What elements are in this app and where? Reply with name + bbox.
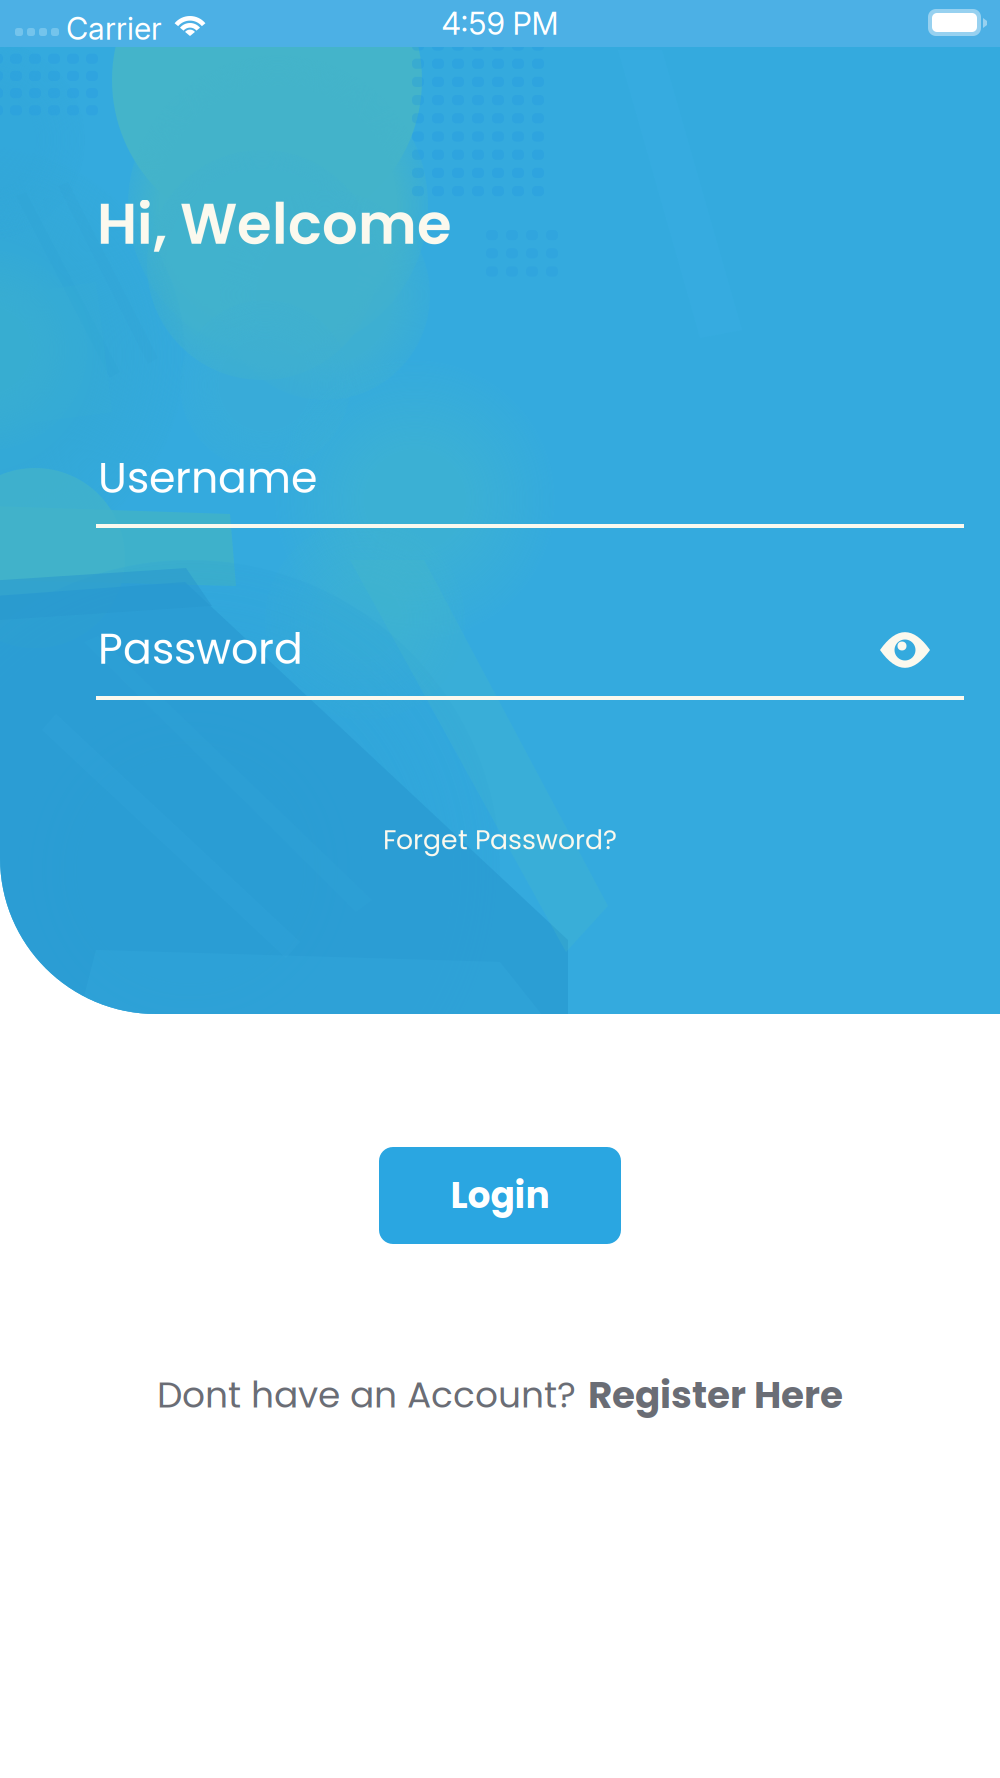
staticText: Forget Password? (383, 821, 617, 859)
staticText: Hi, Welcome (97, 185, 452, 263)
button[interactable]: Dont have an Account? (0, 1365, 1000, 1425)
staticText: Carrier (66, 10, 162, 47)
button[interactable]: Login (379, 1147, 621, 1244)
staticText: Login (450, 1170, 549, 1221)
button[interactable]: Forget Password? (360, 815, 640, 865)
staticText: Dont have an Account? (157, 1370, 576, 1420)
button[interactable]: Show password (880, 633, 930, 667)
staticText: Password (98, 619, 303, 679)
staticText: Register Here (588, 1369, 843, 1421)
staticText: 4:59 PM (441, 5, 558, 42)
staticText: Username (98, 448, 317, 508)
